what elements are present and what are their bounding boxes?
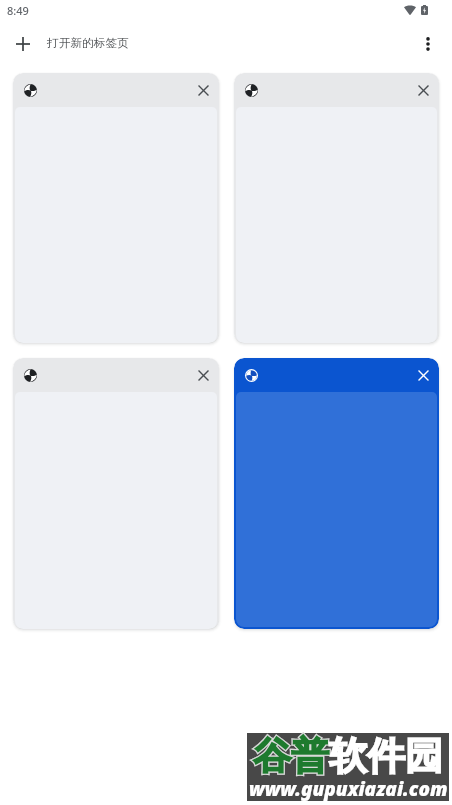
button[interactable]: Close tab — [13, 358, 219, 629]
button[interactable]: Close tab — [191, 363, 215, 387]
button[interactable]: Close tab — [191, 78, 215, 102]
button[interactable]: More options — [407, 23, 449, 65]
staticText: 软件园 — [329, 732, 443, 780]
staticText: 谷普 — [253, 732, 329, 780]
staticText: 8:49 — [7, 3, 29, 18]
staticText: 软件园 — [329, 732, 443, 780]
staticText: 谷普 — [253, 732, 329, 780]
button[interactable]: Close tab — [234, 73, 439, 343]
button[interactable]: Close tab — [234, 358, 439, 629]
button[interactable]: Close tab — [411, 78, 435, 102]
button[interactable]: 打开新的标签页 — [0, 36, 143, 51]
staticText: www.gupuxiazai.com — [249, 776, 448, 802]
staticText: 打开新的标签页 — [47, 36, 129, 51]
button[interactable]: Close tab — [13, 73, 219, 343]
button[interactable]: Close tab — [411, 363, 435, 387]
